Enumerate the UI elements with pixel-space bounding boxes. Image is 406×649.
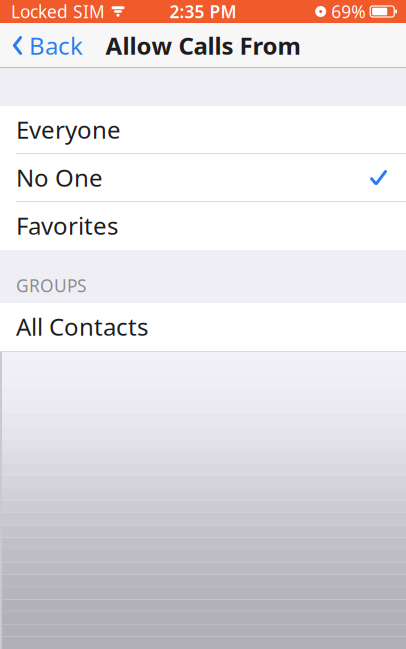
staticText: Back — [29, 30, 83, 61]
staticText: All Contacts — [16, 311, 148, 342]
staticText: Favorites — [16, 210, 118, 241]
staticText: Locked SIM — [11, 0, 105, 23]
staticText: 69% — [331, 0, 365, 23]
button[interactable]: Favorites — [0, 202, 406, 250]
staticText: 2:35 PM — [169, 0, 236, 23]
staticText: Everyone — [16, 114, 121, 145]
staticText: No One — [16, 162, 103, 193]
button[interactable]: Back — [0, 22, 83, 69]
button[interactable]: All Contacts — [0, 303, 406, 351]
staticText: Allow Calls From — [105, 30, 300, 61]
button[interactable]: No One — [0, 154, 406, 202]
button[interactable]: Everyone — [0, 106, 406, 154]
staticText: GROUPS — [16, 274, 87, 297]
